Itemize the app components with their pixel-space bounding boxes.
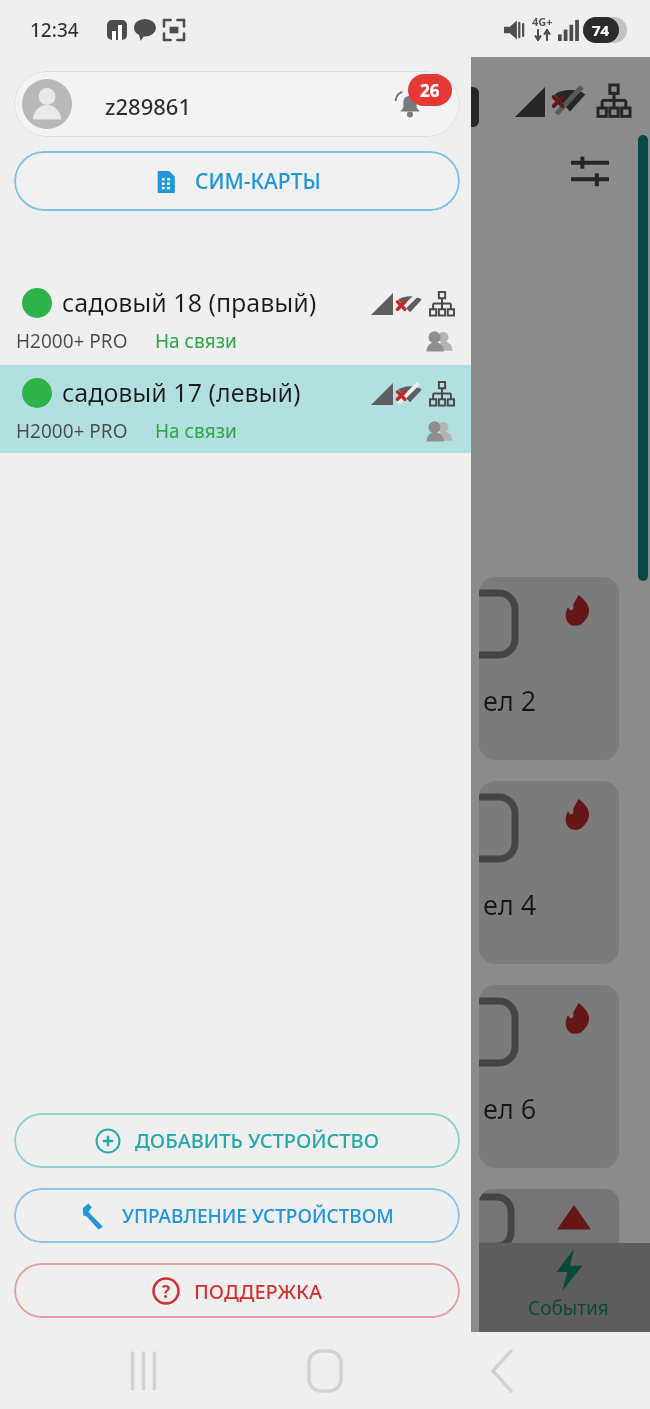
staticText: УПРАВЛЕНИЕ УСТРОЙСТВОМ (122, 1203, 394, 1229)
staticText: z289861 (105, 91, 191, 121)
button[interactable]: садовый 18 (правый) (0, 275, 471, 363)
staticText: ? (162, 1280, 171, 1303)
staticText: События (528, 1295, 609, 1321)
button[interactable]: Recents (108, 1346, 180, 1396)
staticText: садовый 17 (левый) (62, 375, 301, 409)
staticText: СИМ-КАРТЫ (195, 167, 321, 196)
button[interactable]: Уведомления (386, 81, 434, 129)
button[interactable]: z289861 (14, 71, 460, 137)
staticText: 26 (420, 79, 440, 102)
button[interactable]: Home (290, 1346, 360, 1396)
button[interactable]: Back (470, 1346, 540, 1396)
staticText: ДОБАВИТЬ УСТРОЙСТВО (135, 1127, 379, 1154)
button[interactable]: ел 4 (479, 781, 619, 964)
button[interactable]: СИМ-КАРТЫ (14, 151, 460, 211)
staticText: 4G+ (532, 14, 553, 29)
staticText: ел 2 (483, 682, 537, 719)
staticText: ел 4 (483, 886, 537, 923)
button[interactable]: садовый 17 (левый) (0, 365, 471, 453)
staticText: ел 6 (483, 1090, 537, 1127)
staticText: ПОДДЕРЖКА (194, 1278, 323, 1305)
button[interactable]: ? (14, 1263, 460, 1318)
staticText: 12:34 (30, 17, 79, 43)
button[interactable]: События (479, 1243, 650, 1332)
button[interactable]: ДОБАВИТЬ УСТРОЙСТВО (14, 1113, 460, 1168)
staticText: садовый 18 (правый) (62, 285, 317, 319)
staticText: H2000+ PRO (16, 328, 128, 354)
staticText: 74 (592, 20, 610, 40)
button[interactable]: УПРАВЛЕНИЕ УСТРОЙСТВОМ (14, 1188, 460, 1243)
staticText: На связи (155, 418, 237, 444)
staticText: H2000+ PRO (16, 418, 128, 444)
button[interactable]: ел 2 (479, 577, 619, 760)
button[interactable]: ел 6 (479, 985, 619, 1168)
staticText: На связи (155, 328, 237, 354)
